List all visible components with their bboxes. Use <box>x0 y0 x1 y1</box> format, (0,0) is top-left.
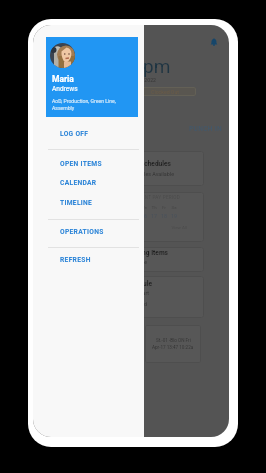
button[interactable]: CALENDAR <box>33 175 144 190</box>
button[interactable]: Schedule <box>88 276 204 318</box>
staticText: 16 <box>139 213 149 219</box>
staticText: REFRESH <box>60 256 91 264</box>
button[interactable]: St.-01 -Blo ON Fri <box>145 325 201 363</box>
button[interactable]: My Schedules <box>88 151 204 186</box>
staticText: We <box>139 205 149 210</box>
staticText: 01:22 pm <box>91 55 171 77</box>
button[interactable]: CURRENT PAY PERIOD <box>88 192 204 242</box>
staticText: Schedule <box>88 280 152 288</box>
staticText: My Schedules <box>88 160 171 168</box>
staticText: 5 Schedules Available <box>88 171 174 177</box>
staticText: Sun, Apr 17, 2022 <box>115 77 156 83</box>
staticText: Start <box>88 290 149 296</box>
staticText: TIMELINE <box>60 199 93 207</box>
staticText: Clocked Out <box>151 89 179 95</box>
staticText: 19 <box>169 213 179 219</box>
staticText: End <box>88 301 147 307</box>
staticText: None <box>88 259 147 265</box>
button[interactable]: Clocked Out <box>134 87 196 96</box>
staticText: CURRENT PAY PERIOD <box>88 195 180 200</box>
button[interactable]: Notifications <box>210 38 218 46</box>
button[interactable]: Pending Items <box>88 247 204 272</box>
staticText: Apr-17 13:47 10:22a <box>152 345 194 350</box>
staticText: AoD, Production, Green Line, Assembly <box>52 98 116 111</box>
button[interactable]: Maria <box>46 37 138 117</box>
staticText: St.-01 -Blo ON Fri <box>156 338 191 343</box>
staticText: Andrews <box>52 85 78 93</box>
button[interactable]: OPERATIONS <box>33 224 144 239</box>
staticText: LOG OFF <box>60 130 89 138</box>
button[interactable]: OPEN ITEMS <box>33 156 144 171</box>
staticText: Maria <box>52 74 74 84</box>
staticText: PUNCH IN <box>189 125 222 133</box>
staticText: OPEN ITEMS <box>60 160 102 168</box>
staticText: Pending Items <box>88 249 168 257</box>
staticText: OPERATIONS <box>60 228 104 236</box>
button[interactable]: LOG OFF <box>33 126 144 141</box>
staticText: View All <box>88 225 187 230</box>
button[interactable]: TIMELINE <box>33 195 144 210</box>
staticText: 18 <box>159 213 169 219</box>
staticText: CALENDAR <box>60 179 97 187</box>
button[interactable]: PUNCH IN <box>184 122 226 136</box>
button[interactable]: REFRESH <box>33 252 144 267</box>
